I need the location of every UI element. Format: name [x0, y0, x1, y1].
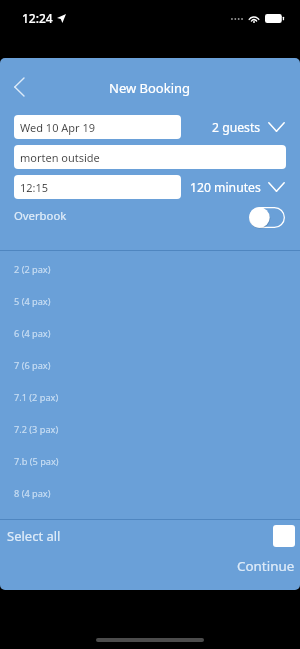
button[interactable]: 5 (4 pax): [0, 285, 300, 317]
button[interactable]: 6 (4 pax): [0, 317, 300, 349]
staticText: 6 (4 pax): [14, 327, 51, 340]
button[interactable]: Wed 10 Apr 19: [14, 115, 181, 139]
staticText: 12:24: [22, 10, 53, 26]
button[interactable]: 2 (2 pax): [0, 253, 300, 285]
button[interactable]: 120 minutes: [190, 179, 285, 196]
staticText: 8 (4 pax): [14, 487, 51, 500]
button[interactable]: 7 (6 pax): [0, 349, 300, 381]
staticText: 7 (6 pax): [14, 359, 51, 372]
staticText: 7.1 (2 pax): [14, 391, 59, 404]
button[interactable]: 7.2 (3 pax): [0, 413, 300, 445]
staticText: 12:15: [20, 180, 49, 195]
button[interactable]: 8 (4 pax): [0, 477, 300, 509]
staticText: 7.2 (3 pax): [14, 423, 59, 436]
button[interactable]: Overbook toggle: [249, 207, 285, 228]
staticText: 2 (2 pax): [14, 263, 51, 276]
button[interactable]: 12:15: [14, 175, 181, 199]
button[interactable]: 2 guests: [212, 119, 285, 136]
button[interactable]: 7.b (5 pax): [0, 445, 300, 477]
staticText: Wed 10 Apr 19: [20, 120, 96, 135]
staticText: Overbook: [14, 208, 67, 223]
button[interactable]: Back: [0, 69, 38, 107]
staticText: 7.b (5 pax): [14, 455, 59, 468]
button[interactable]: morten outside: [14, 145, 286, 169]
button[interactable]: Continue: [228, 553, 300, 579]
staticText: Select all: [7, 527, 61, 545]
button[interactable]: 7.1 (2 pax): [0, 381, 300, 413]
staticText: New Booking: [109, 79, 191, 97]
staticText: 120 minutes: [190, 179, 261, 196]
button[interactable]: Select all checkbox: [273, 525, 295, 547]
staticText: 2 guests: [212, 119, 261, 136]
staticText: Continue: [237, 557, 295, 575]
staticText: 5 (4 pax): [14, 295, 51, 308]
staticText: morten outside: [20, 150, 100, 165]
